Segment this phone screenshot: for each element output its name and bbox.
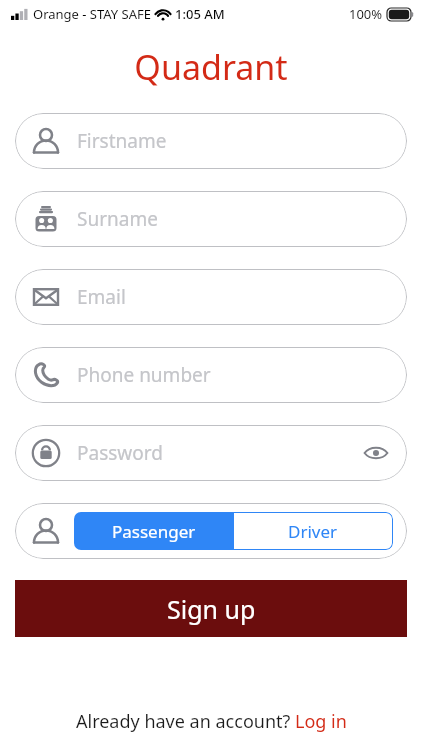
staticText: 100%: [349, 5, 383, 23]
button[interactable]: Driver: [233, 512, 393, 550]
staticText: 1:05 AM: [175, 5, 225, 23]
button[interactable]: Passenger: [74, 512, 233, 550]
button[interactable]: Password: [15, 425, 407, 481]
staticText: Driver: [288, 520, 338, 543]
button[interactable]: Sign up: [15, 580, 407, 637]
staticText: Password: [77, 440, 361, 466]
staticText: Firstname: [77, 128, 391, 154]
button[interactable]: Firstname: [15, 113, 407, 169]
button[interactable]: Email: [15, 269, 407, 325]
button[interactable]: Already have an account? Log in: [0, 709, 422, 734]
button[interactable]: Show password: [361, 438, 391, 468]
staticText: Sign up: [167, 592, 256, 626]
staticText: Email: [77, 284, 391, 310]
staticText: Phone number: [77, 362, 391, 388]
button[interactable]: Phone number: [15, 347, 407, 403]
staticText: Orange - STAY SAFE: [33, 5, 152, 23]
staticText: Quadrant: [0, 44, 422, 90]
staticText: Passenger: [112, 520, 196, 543]
staticText: Already have an account? Log in: [76, 709, 347, 734]
staticText: Surname: [77, 206, 391, 232]
button[interactable]: Surname: [15, 191, 407, 247]
